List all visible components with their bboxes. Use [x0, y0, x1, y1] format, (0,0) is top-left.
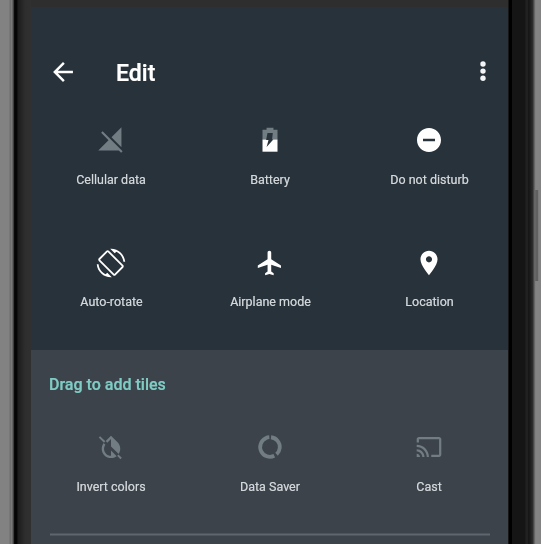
staticText: Battery	[250, 172, 290, 187]
button[interactable]	[349, 114, 508, 190]
staticText: Airplane mode	[230, 294, 311, 309]
staticText: Edit	[116, 60, 156, 87]
staticText: Cast	[416, 479, 442, 494]
button[interactable]	[31, 421, 190, 497]
staticText: Location	[405, 294, 454, 309]
button[interactable]	[31, 237, 190, 313]
button[interactable]	[190, 237, 349, 313]
staticText: Cellular data	[76, 172, 146, 187]
staticText: Drag to add tiles	[49, 375, 166, 394]
button[interactable]: More options	[461, 49, 505, 93]
staticText: Auto-rotate	[80, 294, 143, 309]
button[interactable]: Navigate back	[41, 50, 85, 94]
button[interactable]	[349, 237, 508, 313]
button[interactable]	[190, 114, 349, 190]
button[interactable]	[190, 421, 349, 497]
staticText: Data Saver	[240, 479, 300, 494]
staticText: Do not disturb	[390, 172, 469, 187]
staticText: Invert colors	[76, 479, 146, 494]
button[interactable]	[349, 421, 508, 497]
button[interactable]	[31, 114, 190, 190]
